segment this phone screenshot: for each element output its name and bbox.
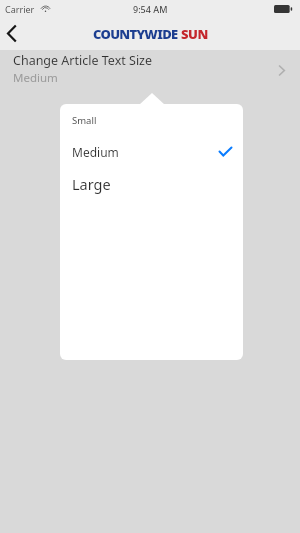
staticText: Large [72,174,111,194]
button[interactable]: Back [0,17,36,50]
staticText: Small [72,114,97,127]
staticText: Change Article Text Size [13,52,153,69]
staticText: COUNTYWIDE [93,25,178,43]
button[interactable]: Countywide Sun [93,25,208,43]
button[interactable]: Medium [60,136,243,167]
staticText: SUN [181,25,208,43]
staticText: Medium [72,144,119,160]
button[interactable]: Large [60,167,243,201]
button[interactable]: Change Article Text Size [0,50,300,90]
button[interactable]: Small [60,104,243,136]
staticText: Carrier [5,3,35,15]
staticText: Medium [13,70,58,86]
staticText: 9:54 AM [133,3,168,15]
